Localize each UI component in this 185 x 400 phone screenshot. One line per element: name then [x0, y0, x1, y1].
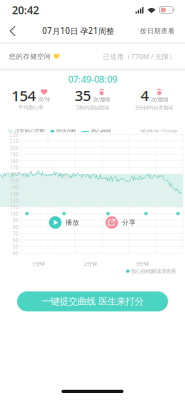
staticText: 160	[9, 170, 18, 178]
staticText: 120	[9, 197, 18, 204]
staticText: 150	[9, 177, 18, 184]
staticText: 200	[9, 144, 18, 151]
staticText: 110	[9, 203, 18, 211]
staticText: 次/分	[38, 95, 50, 102]
staticText: 3分钟	[136, 260, 149, 267]
staticText: 100	[9, 210, 18, 217]
button[interactable]: 按日期查看	[133, 20, 185, 42]
staticText: 次/胎动	[151, 96, 168, 103]
staticText: 140	[9, 184, 18, 191]
staticText: 50	[12, 243, 18, 250]
staticText: 2分钟	[84, 260, 97, 267]
staticText: 5分钟内合并胎动	[135, 104, 173, 111]
staticText: 210	[9, 137, 18, 145]
button[interactable]: 播放	[49, 216, 79, 229]
staticText: 一键提交曲线 医生来打分	[41, 296, 143, 307]
staticText: 按日期查看	[140, 27, 175, 35]
staticText: 80	[12, 223, 18, 230]
button[interactable]: 一键提交曲线 医生来打分	[17, 291, 168, 311]
staticText: 胎动次数	[56, 128, 76, 135]
staticText: 播放	[65, 218, 79, 227]
button[interactable]: 分享	[105, 216, 136, 229]
staticText: 35	[75, 86, 91, 105]
staticText: 胎心曲线	[91, 128, 111, 135]
staticText: 220	[9, 131, 18, 138]
staticText: 正常胎心范围	[14, 128, 44, 135]
staticText: 07月10日 孕21周整	[42, 26, 114, 36]
staticText: 次/胎动	[93, 96, 110, 103]
staticText: 胎心曲线解读请查看	[131, 268, 176, 274]
staticText: 90	[12, 217, 18, 224]
staticText: 154	[12, 86, 36, 105]
staticText: 分享	[122, 218, 136, 227]
staticText: 70	[12, 230, 18, 237]
staticText: 40	[12, 250, 18, 257]
staticText: 60	[12, 236, 18, 244]
staticText: 1分钟	[32, 260, 45, 267]
staticText: 5秒内原始胎动	[76, 104, 109, 111]
staticText: 已使用（770M / 无限）	[103, 52, 176, 61]
staticText: 20:42	[12, 3, 39, 17]
staticText: 170	[9, 164, 18, 171]
staticText: 07:49-08:09	[68, 73, 117, 85]
staticText: 测试时长:20分钟	[140, 128, 177, 135]
staticText: 180	[9, 157, 18, 164]
staticText: 4	[140, 86, 148, 105]
button[interactable]: 返回	[0, 20, 23, 42]
staticText: 190	[9, 151, 18, 158]
staticText: 130	[9, 190, 18, 197]
staticText: 平均胎心率	[18, 104, 43, 111]
staticText: 您的存储空间	[9, 52, 51, 61]
